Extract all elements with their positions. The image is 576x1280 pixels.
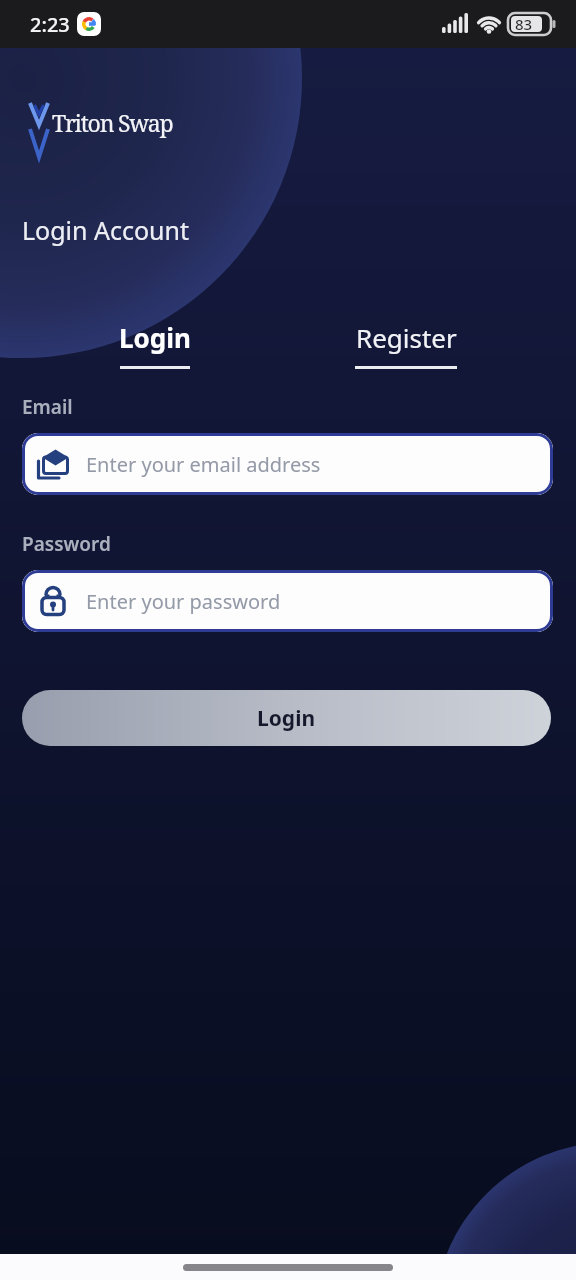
button[interactable]: Enter your email address (22, 433, 553, 495)
staticText: 83 (515, 14, 533, 34)
button[interactable]: Register (353, 318, 459, 376)
staticText: Email (22, 394, 73, 420)
button[interactable]: Login (105, 318, 205, 376)
staticText: 2:23 (30, 11, 70, 38)
staticText: Register (356, 320, 457, 355)
button[interactable]: Login (22, 690, 551, 746)
staticText: Login (257, 704, 316, 733)
staticText: Login (119, 320, 191, 355)
staticText: Triton Swap (52, 107, 173, 138)
staticText: Enter your email address (86, 451, 321, 478)
button[interactable]: Enter your password (22, 570, 553, 632)
staticText: Login Account (22, 213, 190, 247)
staticText: Enter your password (86, 588, 281, 615)
staticText: Password (22, 531, 111, 557)
